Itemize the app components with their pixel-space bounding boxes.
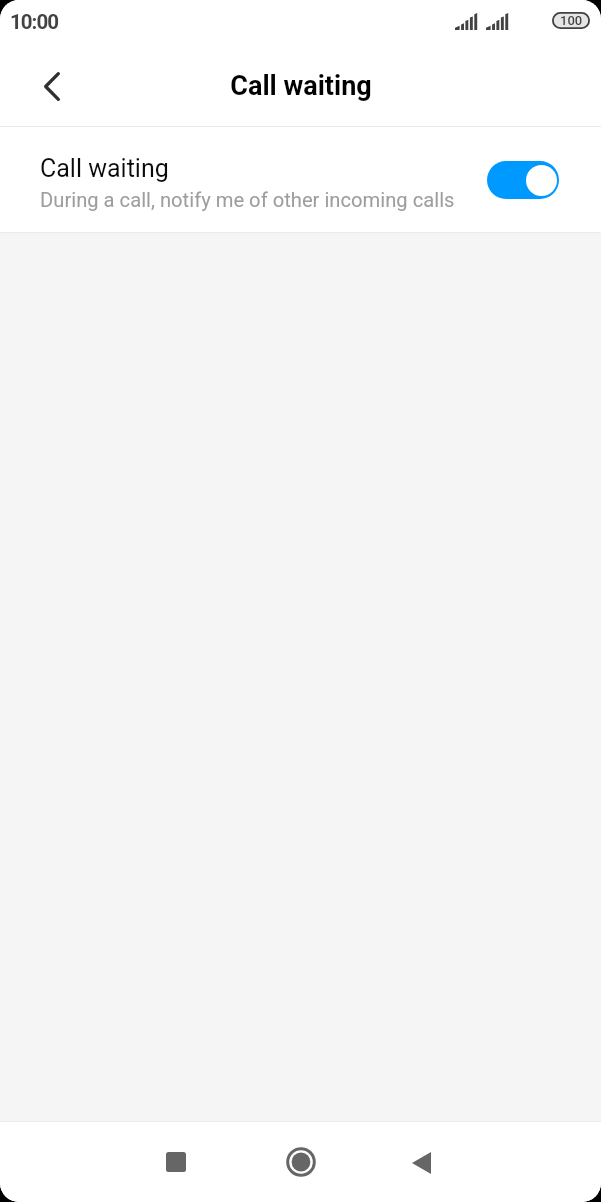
staticText: 10:00 — [10, 10, 59, 34]
staticText: 100 — [560, 13, 583, 28]
button[interactable]: Home — [265, 1126, 337, 1198]
staticText: During a call, notify me of other incomi… — [40, 188, 455, 212]
button[interactable]: Call waiting — [0, 127, 601, 232]
staticText: Call waiting — [40, 154, 169, 183]
staticText: Call waiting — [230, 70, 372, 102]
button[interactable]: Recent apps — [141, 1126, 213, 1198]
button[interactable]: Call waiting toggle — [487, 161, 559, 199]
button[interactable]: Back — [21, 56, 82, 117]
button[interactable]: Back — [389, 1126, 461, 1198]
